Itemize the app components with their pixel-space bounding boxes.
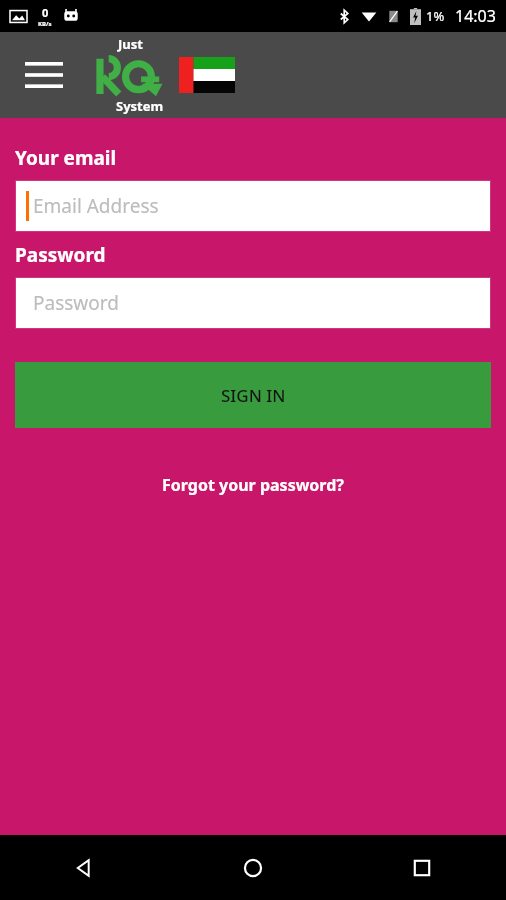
staticText: System: [116, 97, 164, 115]
button[interactable]: Back: [0, 835, 168, 900]
staticText: Password: [33, 290, 119, 316]
staticText: Just: [118, 35, 143, 53]
staticText: KB/s: [38, 20, 52, 28]
staticText: 1%: [426, 7, 445, 25]
staticText: Forgot your password?: [162, 474, 344, 496]
staticText: 0: [42, 5, 49, 20]
button[interactable]: Recent apps: [337, 835, 506, 900]
button[interactable]: Email Address: [16, 181, 490, 231]
button[interactable]: Password: [16, 278, 490, 328]
staticText: Your email: [15, 145, 117, 171]
button[interactable]: SIGN IN: [15, 362, 491, 428]
staticText: Password: [15, 242, 106, 268]
button[interactable]: Forgot your password?: [154, 470, 352, 500]
button[interactable]: Home: [168, 835, 337, 900]
staticText: 14:03: [455, 5, 496, 27]
button[interactable]: Open navigation menu: [18, 49, 70, 101]
staticText: SIGN IN: [221, 384, 286, 407]
staticText: Email Address: [33, 193, 159, 219]
